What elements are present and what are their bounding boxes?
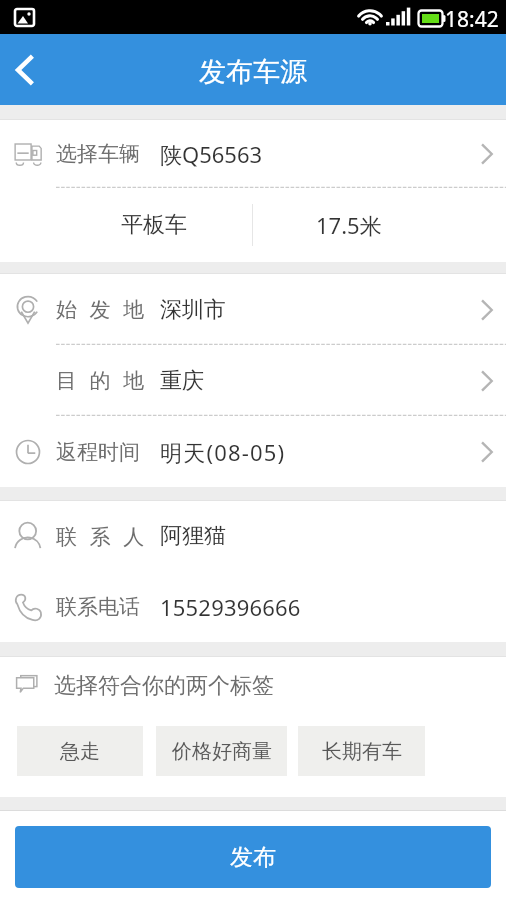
staticText: 选择符合你的两个标签: [54, 672, 274, 700]
staticText: 联 系 人: [56, 522, 145, 551]
button[interactable]: 选择车辆: [0, 120, 506, 188]
staticText: 长期有车: [322, 739, 402, 764]
staticText: 始 发 地: [56, 295, 145, 324]
staticText: 发布: [230, 843, 276, 872]
button[interactable]: 选择符合你的两个标签: [0, 657, 506, 711]
staticText: 15529396666: [160, 592, 301, 622]
staticText: 重庆: [160, 367, 204, 395]
button[interactable]: Back: [0, 34, 52, 105]
button[interactable]: 目 的 地: [0, 345, 506, 416]
button[interactable]: 急走: [17, 726, 143, 776]
staticText: 深圳市: [160, 296, 226, 324]
button[interactable]: 返程时间: [0, 416, 506, 487]
button[interactable]: 联系电话: [0, 571, 506, 642]
staticText: 返程时间: [56, 439, 140, 465]
button[interactable]: 长期有车: [298, 726, 425, 776]
staticText: 18:42: [445, 5, 499, 34]
staticText: 阿狸猫: [160, 522, 226, 550]
staticText: 联系电话: [56, 594, 140, 620]
staticText: 明天(08-05): [160, 437, 286, 467]
staticText: 平板车: [121, 211, 187, 239]
other: Open: [466, 130, 506, 178]
button[interactable]: 始 发 地: [0, 274, 506, 345]
button[interactable]: 联 系 人: [0, 501, 506, 571]
staticText: 目 的 地: [56, 366, 145, 395]
button[interactable]: 发布: [15, 826, 491, 888]
staticText: 发布车源: [199, 55, 307, 89]
staticText: 陕Q56563: [160, 139, 263, 169]
staticText: 急走: [60, 739, 100, 764]
other: Open: [466, 428, 506, 476]
staticText: 选择车辆: [56, 141, 140, 167]
other: Open: [466, 357, 506, 405]
button[interactable]: 平板车: [56, 188, 252, 262]
button[interactable]: 价格好商量: [156, 726, 287, 776]
button[interactable]: 17.5米: [253, 188, 444, 262]
other: Open: [466, 286, 506, 334]
staticText: 价格好商量: [172, 739, 272, 764]
staticText: 17.5米: [316, 210, 382, 240]
